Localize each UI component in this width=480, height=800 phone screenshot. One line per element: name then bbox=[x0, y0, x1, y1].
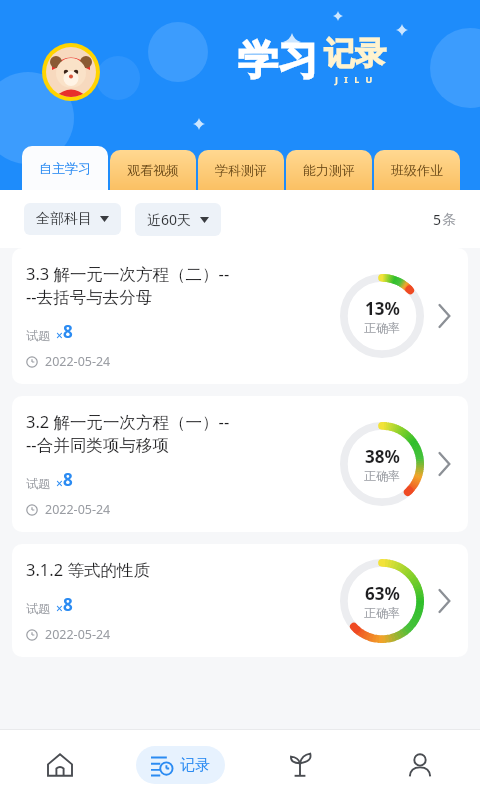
staticText: 能力测评 bbox=[303, 162, 355, 178]
staticText: × bbox=[56, 327, 63, 343]
button[interactable]: 3.1.2 等式的性质 bbox=[12, 544, 468, 657]
button[interactable]: 近60天 bbox=[135, 203, 221, 236]
button[interactable]: Home bbox=[0, 730, 120, 800]
staticText: 2022-05-24 bbox=[45, 501, 111, 518]
button[interactable]: 3.2 解一元一次方程（一）-- bbox=[12, 396, 468, 532]
button[interactable]: 观看视频 bbox=[110, 150, 196, 190]
button[interactable]: Open detail bbox=[430, 587, 458, 615]
staticText: J I L U bbox=[335, 73, 375, 85]
staticText: 8 bbox=[63, 593, 73, 616]
staticText: 2022-05-24 bbox=[45, 626, 111, 643]
button[interactable]: Open detail bbox=[430, 302, 458, 330]
staticText: 条 bbox=[442, 211, 456, 229]
button[interactable]: Growth bbox=[240, 730, 360, 800]
staticText: 8 bbox=[63, 468, 73, 491]
staticText: × bbox=[56, 475, 63, 491]
staticText: 3.1.2 等式的性质 bbox=[26, 558, 150, 581]
staticText: 正确率 bbox=[364, 605, 400, 620]
staticText: --去括号与去分母 bbox=[26, 285, 153, 308]
button[interactable]: 学科测评 bbox=[198, 150, 284, 190]
staticText: 班级作业 bbox=[391, 162, 443, 178]
staticText: 试题 bbox=[26, 601, 50, 616]
staticText: 观看视频 bbox=[127, 162, 179, 178]
staticText: × bbox=[56, 600, 63, 616]
button[interactable]: 班级作业 bbox=[374, 150, 460, 190]
staticText: 学习 bbox=[238, 35, 318, 85]
staticText: 63% bbox=[365, 582, 400, 605]
staticText: 3.2 解一元一次方程（一）-- bbox=[26, 410, 230, 433]
staticText: 记录 bbox=[324, 34, 386, 73]
staticText: 13% bbox=[365, 297, 400, 320]
staticText: 38% bbox=[365, 445, 400, 468]
staticText: 试题 bbox=[26, 476, 50, 491]
button[interactable]: 记录 bbox=[136, 746, 225, 784]
button[interactable]: Profile avatar bbox=[42, 43, 100, 101]
staticText: 5 bbox=[433, 210, 442, 229]
staticText: 3.3 解一元一次方程（二）-- bbox=[26, 262, 230, 285]
staticText: 自主学习 bbox=[39, 160, 91, 176]
staticText: 学科测评 bbox=[215, 162, 267, 178]
button[interactable]: Profile bbox=[360, 730, 480, 800]
staticText: 8 bbox=[63, 320, 73, 343]
staticText: 近60天 bbox=[147, 210, 192, 229]
staticText: 试题 bbox=[26, 328, 50, 343]
staticText: 正确率 bbox=[364, 468, 400, 483]
staticText: 正确率 bbox=[364, 320, 400, 335]
button[interactable]: 能力测评 bbox=[286, 150, 372, 190]
button[interactable]: Open detail bbox=[430, 450, 458, 478]
staticText: 2022-05-24 bbox=[45, 353, 111, 370]
staticText: 记录 bbox=[180, 756, 210, 775]
button[interactable]: 全部科目 bbox=[24, 203, 121, 235]
staticText: --合并同类项与移项 bbox=[26, 433, 169, 456]
button[interactable]: 自主学习 bbox=[22, 146, 108, 190]
button[interactable]: 3.3 解一元一次方程（二）-- bbox=[12, 248, 468, 384]
staticText: 全部科目 bbox=[36, 210, 92, 228]
